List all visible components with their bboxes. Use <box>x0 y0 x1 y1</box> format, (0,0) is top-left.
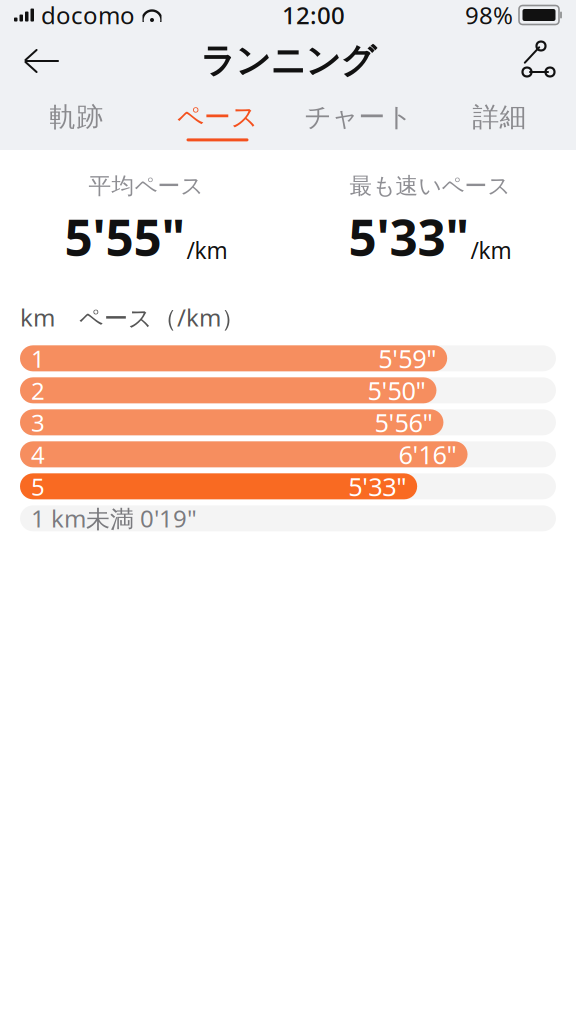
button[interactable]: Back <box>14 33 70 89</box>
staticText: 98% <box>465 0 513 31</box>
staticText: 4 <box>31 438 45 470</box>
staticText: ランニング <box>200 40 375 82</box>
button[interactable]: 詳細 <box>429 94 570 148</box>
staticText: /km <box>470 235 511 265</box>
staticText: 1 <box>31 342 45 374</box>
button[interactable]: チャート <box>288 94 429 148</box>
button[interactable]: ペース <box>147 94 288 148</box>
staticText: 5'33" <box>348 204 469 269</box>
staticText: 詳細 <box>472 101 526 133</box>
staticText: 5'55" <box>64 204 185 269</box>
staticText: 5'59" <box>378 341 436 375</box>
staticText: km ペース（/km） <box>20 301 245 333</box>
staticText: 軌跡 <box>49 101 103 133</box>
button[interactable]: Share <box>506 33 562 89</box>
staticText: docomo <box>41 0 135 31</box>
staticText: チャート <box>304 101 412 133</box>
staticText: 3 <box>31 406 45 438</box>
staticText: 5'50" <box>367 373 425 407</box>
staticText: /km <box>186 235 227 265</box>
staticText: 5 <box>31 470 45 502</box>
staticText: ペース <box>177 101 258 133</box>
staticText: 平均ペース <box>88 172 203 200</box>
button[interactable]: 軌跡 <box>6 94 147 148</box>
staticText: 2 <box>31 374 45 406</box>
staticText: 1 km未満 0'19" <box>31 502 197 534</box>
staticText: 5'33" <box>348 469 406 503</box>
staticText: 最も速いペース <box>349 172 510 200</box>
staticText: 12:00 <box>282 0 345 31</box>
staticText: 6'16" <box>399 437 457 471</box>
staticText: 5'56" <box>374 405 432 439</box>
